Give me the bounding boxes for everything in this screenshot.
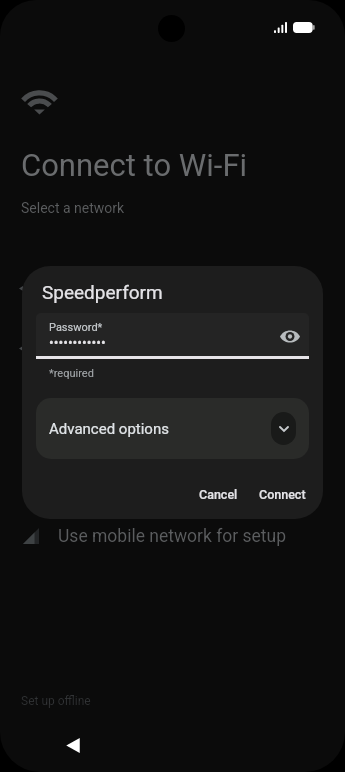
staticText: Connect to Wi-Fi <box>21 147 248 183</box>
staticText: Select a network <box>21 200 125 216</box>
staticText: Password* <box>49 321 103 334</box>
button[interactable]: Set up offline <box>13 688 99 714</box>
button[interactable]: Show password <box>273 319 307 353</box>
staticText: Speedperform <box>42 281 163 303</box>
button[interactable]: Cancel <box>189 479 248 510</box>
button[interactable]: Expand advanced options <box>271 412 296 445</box>
button[interactable]: Use mobile network for setup <box>0 514 345 558</box>
staticText: *required <box>49 367 94 380</box>
staticText: •••••••••••• <box>49 335 106 351</box>
button[interactable]: Back <box>55 727 91 763</box>
staticText: Connect <box>259 487 306 502</box>
button[interactable]: Password* <box>36 313 309 359</box>
button[interactable]: Advanced options <box>36 398 309 459</box>
button[interactable]: Connect <box>249 479 316 510</box>
staticText: Advanced options <box>49 420 169 438</box>
staticText: Cancel <box>199 487 238 502</box>
staticText: Use mobile network for setup <box>58 526 287 547</box>
